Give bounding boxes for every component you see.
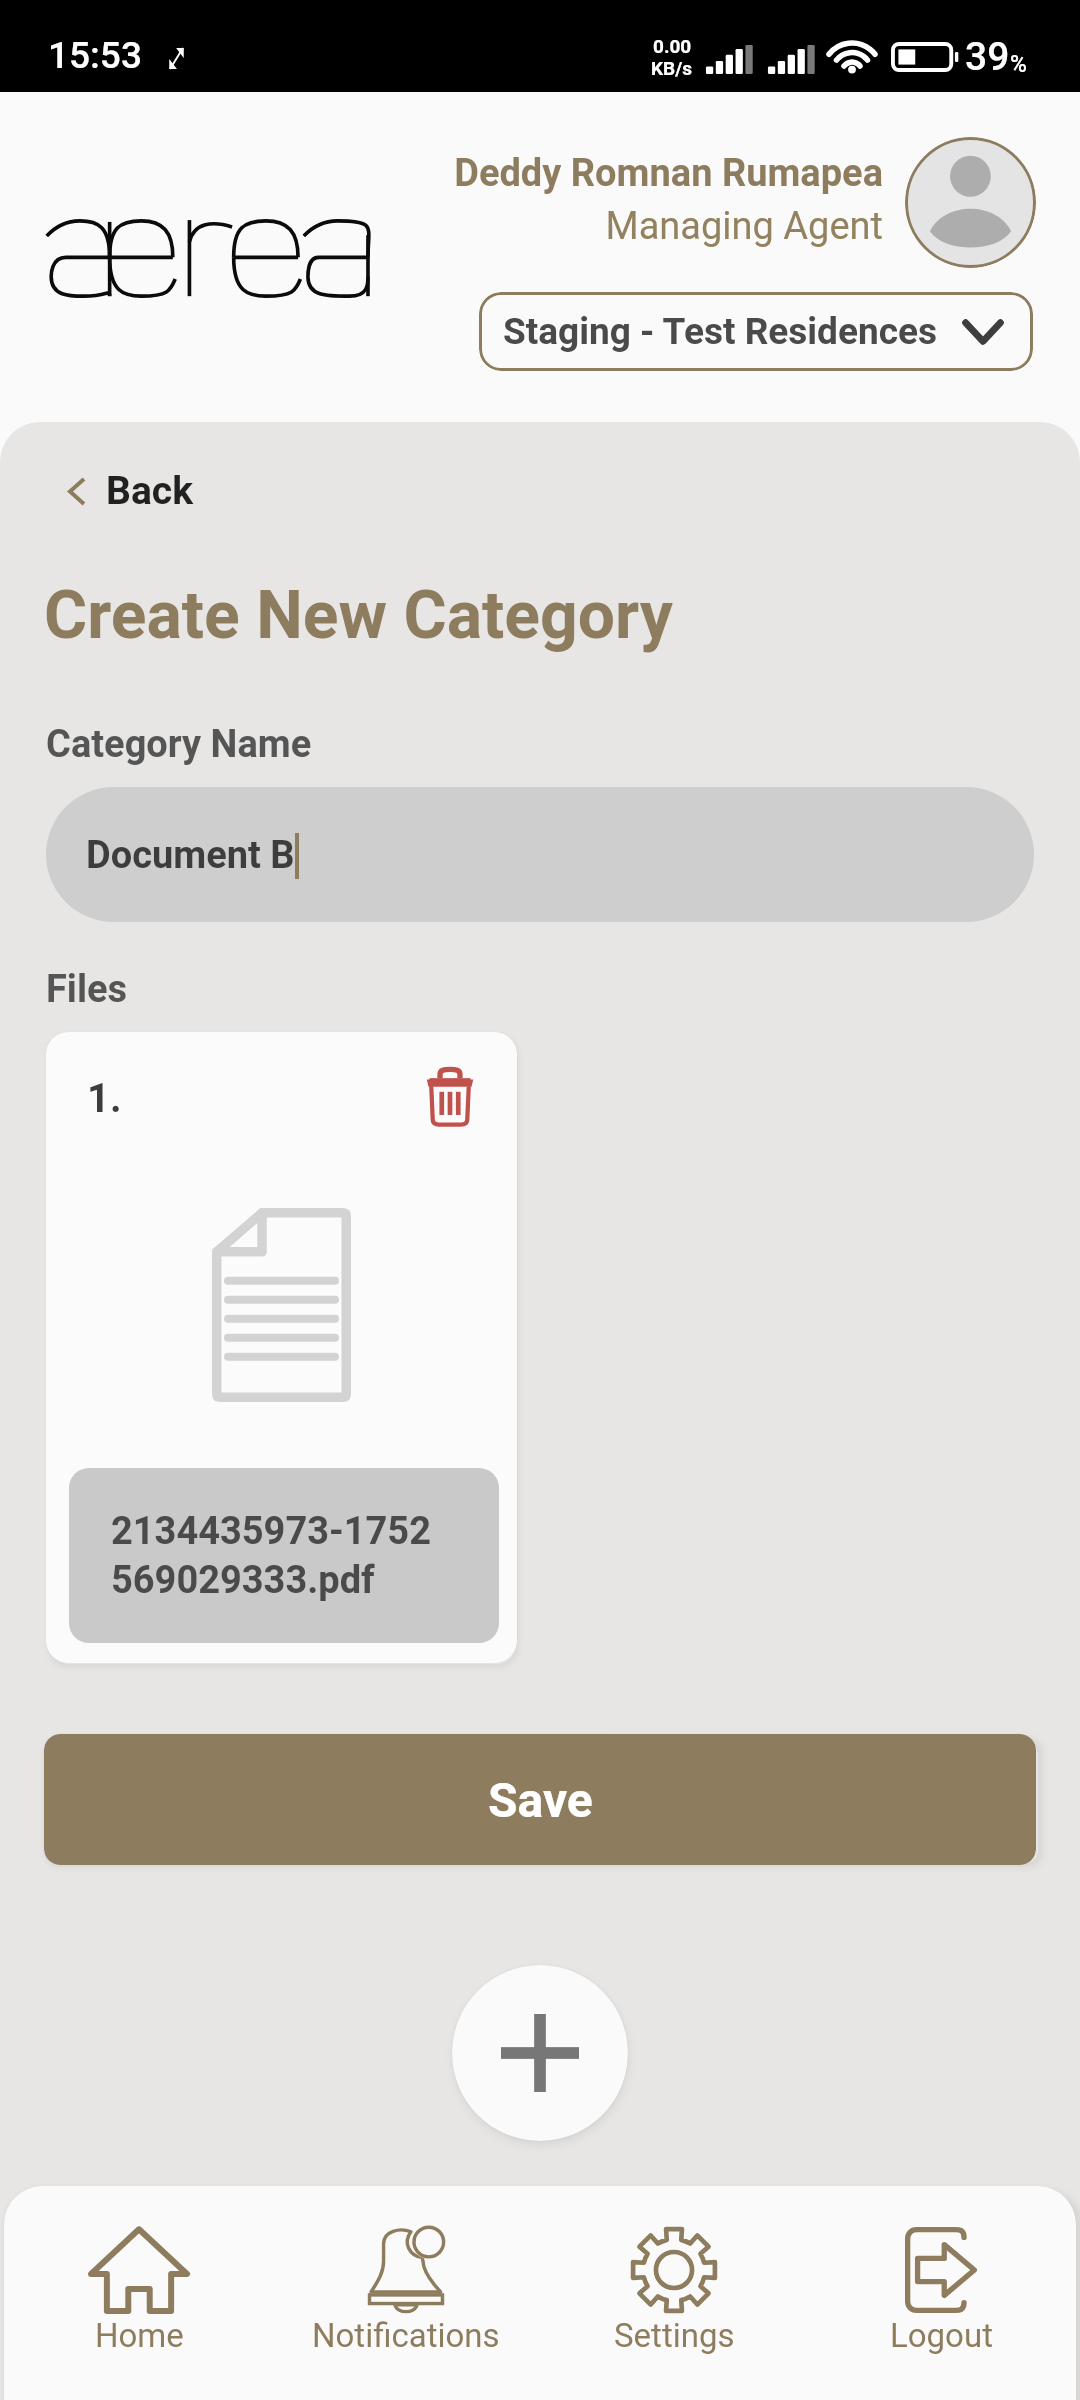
button[interactable]: Delete file (410, 1057, 490, 1137)
button[interactable]: Settings (541, 2186, 807, 2400)
staticText: Document B (86, 833, 295, 878)
staticText: % (1010, 51, 1027, 78)
staticText: Home (95, 2316, 184, 2355)
staticText: Files (46, 967, 128, 1012)
button[interactable]: Notifications (273, 2186, 539, 2400)
staticText: 1. (87, 1075, 122, 1122)
staticText: Create New Category (44, 577, 673, 654)
staticText: Notifications (312, 2316, 500, 2355)
staticText: Category Name (46, 722, 312, 767)
button[interactable]: Profile (905, 137, 1036, 268)
staticText: Settings (614, 2316, 735, 2355)
staticText: Deddy Romnan Rumapea (431, 151, 883, 196)
staticText: Managing Agent (431, 204, 883, 249)
staticText: Staging - Test Residences (503, 310, 938, 353)
staticText: Logout (890, 2316, 993, 2355)
staticText: Save (488, 1772, 593, 1828)
button[interactable]: Logout (808, 2186, 1074, 2400)
button[interactable]: Save (44, 1734, 1036, 1865)
staticText: 39 (965, 34, 1010, 80)
button[interactable]: Back (62, 458, 199, 524)
button[interactable]: 2134435973-1752 569029333.pdf (69, 1468, 499, 1643)
staticText: KB/s (651, 57, 693, 79)
staticText: 0.00 (653, 35, 692, 57)
staticText: 2134435973-1752 569029333.pdf (111, 1509, 431, 1602)
staticText: 15:53 (48, 34, 142, 77)
staticText: Back (106, 468, 193, 514)
button[interactable]: Home (6, 2186, 272, 2400)
button[interactable]: Add file (452, 1965, 628, 2141)
button[interactable]: Document B (46, 787, 1034, 922)
button[interactable]: Staging - Test Residences (479, 292, 1033, 371)
